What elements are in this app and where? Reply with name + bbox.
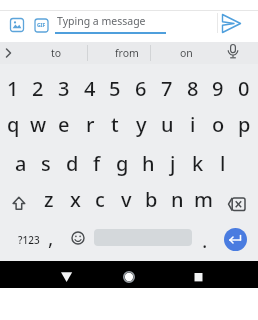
staticText: ?123 bbox=[18, 233, 40, 247]
button[interactable]: 8 bbox=[180, 69, 206, 107]
staticText: f bbox=[93, 150, 101, 177]
staticText: l bbox=[220, 150, 226, 177]
button[interactable]: k bbox=[185, 144, 211, 182]
staticText: z bbox=[44, 186, 54, 213]
staticText: p bbox=[238, 111, 251, 138]
staticText: 5 bbox=[109, 75, 121, 102]
button[interactable]: p bbox=[231, 105, 257, 143]
staticText: q bbox=[7, 111, 20, 138]
staticText: b bbox=[145, 186, 158, 213]
staticText: u bbox=[161, 111, 174, 138]
button[interactable]: . bbox=[195, 227, 215, 253]
button[interactable]: d bbox=[59, 144, 85, 182]
staticText: k bbox=[192, 150, 204, 177]
staticText: 9 bbox=[212, 75, 224, 102]
staticText: x bbox=[70, 186, 81, 213]
button[interactable]: f bbox=[84, 144, 110, 182]
button[interactable]: s bbox=[33, 144, 59, 182]
button[interactable]: e bbox=[51, 105, 77, 143]
staticText: 6 bbox=[135, 75, 147, 102]
button[interactable]: i bbox=[180, 105, 206, 143]
staticText: j bbox=[170, 150, 176, 177]
staticText: 7 bbox=[161, 75, 173, 102]
button[interactable]: l bbox=[210, 144, 236, 182]
staticText: Typing a message bbox=[57, 14, 146, 28]
staticText: v bbox=[121, 186, 132, 213]
staticText: 2 bbox=[32, 75, 44, 102]
button[interactable]: h bbox=[135, 144, 161, 182]
button[interactable]: x bbox=[62, 180, 88, 218]
button[interactable]: ?123 bbox=[12, 227, 46, 253]
staticText: , bbox=[48, 224, 54, 250]
button[interactable]: w bbox=[25, 105, 51, 143]
staticText: o bbox=[212, 111, 225, 138]
button[interactable] bbox=[186, 265, 211, 288]
staticText: a bbox=[15, 150, 27, 177]
staticText: to bbox=[51, 46, 62, 60]
staticText: on bbox=[180, 46, 193, 60]
button[interactable]: Typing a message bbox=[55, 11, 215, 36]
button[interactable]: g bbox=[109, 144, 135, 182]
staticText: d bbox=[66, 150, 79, 177]
button[interactable]: t bbox=[102, 105, 128, 143]
button[interactable] bbox=[9, 17, 25, 33]
staticText: g bbox=[116, 150, 129, 177]
button[interactable]: GIF bbox=[34, 18, 49, 33]
button[interactable] bbox=[224, 190, 252, 218]
staticText: 4 bbox=[84, 75, 96, 102]
button[interactable]: n bbox=[164, 180, 190, 218]
button[interactable]: to bbox=[28, 42, 84, 64]
button[interactable]: o bbox=[205, 105, 231, 143]
button[interactable]: 3 bbox=[51, 69, 77, 107]
button[interactable]: m bbox=[190, 180, 216, 218]
staticText: i bbox=[190, 111, 196, 138]
staticText: h bbox=[142, 150, 155, 177]
button[interactable]: from bbox=[99, 42, 155, 64]
button[interactable]: 5 bbox=[102, 69, 128, 107]
button[interactable]: 6 bbox=[128, 69, 154, 107]
button[interactable]: r bbox=[77, 105, 103, 143]
button[interactable]: c bbox=[87, 180, 113, 218]
button[interactable] bbox=[225, 43, 241, 63]
staticText: 1 bbox=[7, 75, 19, 102]
staticText: s bbox=[41, 150, 51, 177]
staticText: 0 bbox=[238, 75, 250, 102]
button[interactable]: v bbox=[113, 180, 139, 218]
staticText: c bbox=[95, 186, 105, 213]
button[interactable]: 0 bbox=[231, 69, 257, 107]
staticText: m bbox=[194, 186, 213, 213]
button[interactable] bbox=[6, 190, 32, 216]
button[interactable] bbox=[0, 42, 22, 64]
button[interactable]: y bbox=[128, 105, 154, 143]
button[interactable]: u bbox=[154, 105, 180, 143]
button[interactable] bbox=[117, 265, 141, 288]
staticText: . bbox=[202, 227, 208, 253]
button[interactable]: 2 bbox=[25, 69, 51, 107]
staticText: t bbox=[111, 111, 119, 138]
staticText: e bbox=[58, 111, 70, 138]
button[interactable]: on bbox=[158, 42, 214, 64]
staticText: 8 bbox=[187, 75, 199, 102]
button[interactable]: q bbox=[0, 105, 26, 143]
button[interactable]: z bbox=[36, 180, 62, 218]
button[interactable] bbox=[64, 224, 92, 252]
staticText: 3 bbox=[58, 75, 70, 102]
button[interactable]: 9 bbox=[205, 69, 231, 107]
button[interactable] bbox=[54, 265, 79, 288]
button[interactable]: j bbox=[160, 144, 186, 182]
button[interactable]: a bbox=[8, 144, 34, 182]
staticText: GIF bbox=[37, 22, 46, 29]
button[interactable]: b bbox=[138, 180, 164, 218]
button[interactable]: 7 bbox=[154, 69, 180, 107]
button[interactable]: 1 bbox=[0, 69, 26, 107]
button[interactable] bbox=[224, 228, 247, 251]
staticText: r bbox=[86, 111, 95, 138]
staticText: w bbox=[30, 111, 47, 138]
staticText: y bbox=[136, 111, 147, 138]
button[interactable] bbox=[221, 13, 242, 34]
staticText: n bbox=[171, 186, 184, 213]
button[interactable]: 4 bbox=[77, 69, 103, 107]
staticText: from bbox=[115, 46, 139, 60]
button[interactable]: , bbox=[41, 224, 61, 250]
